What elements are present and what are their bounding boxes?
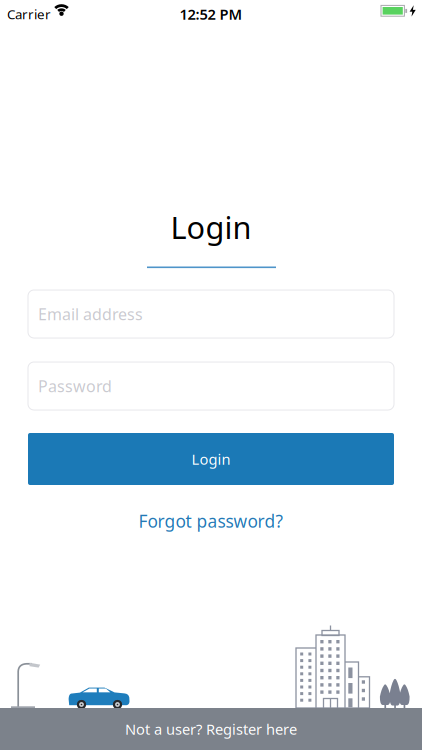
button[interactable]: Login [28, 433, 394, 485]
button[interactable]: Email address [28, 290, 394, 338]
staticText: 12:52 PM [179, 4, 242, 24]
staticText: Password [38, 375, 112, 397]
staticText: Carrier [7, 5, 51, 23]
staticText: Login [191, 449, 230, 469]
button[interactable]: Forgot password? [138, 509, 283, 532]
staticText: Email address [38, 303, 143, 325]
staticText: Not a user? Register here [125, 719, 297, 739]
button[interactable]: Password [28, 362, 394, 410]
staticText: Login [170, 207, 251, 247]
button[interactable]: Not a user? Register here [0, 708, 422, 750]
staticText: Forgot password? [138, 509, 283, 532]
